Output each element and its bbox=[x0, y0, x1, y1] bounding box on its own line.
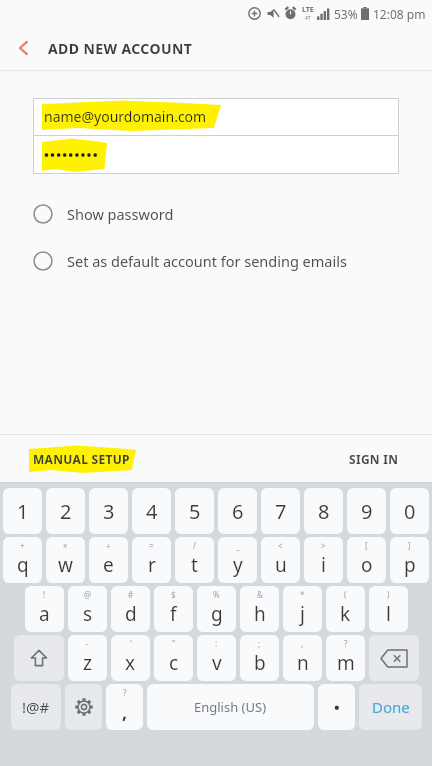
button[interactable]: , bbox=[283, 635, 322, 681]
button[interactable]: 3 bbox=[89, 488, 128, 534]
staticText: ( bbox=[344, 589, 347, 600]
button[interactable]: " bbox=[154, 635, 193, 681]
staticText: u bbox=[275, 552, 287, 578]
staticText: @ bbox=[84, 589, 92, 600]
button[interactable]: > bbox=[304, 537, 343, 583]
staticText: & bbox=[257, 589, 263, 600]
staticText: LTE bbox=[302, 5, 314, 15]
staticText: , bbox=[301, 638, 304, 649]
button[interactable]: ] bbox=[390, 537, 429, 583]
staticText: $ bbox=[171, 589, 176, 600]
staticText: q bbox=[17, 552, 29, 578]
staticText: # bbox=[128, 589, 134, 600]
button[interactable]: ( bbox=[326, 586, 365, 632]
button[interactable]: MANUAL SETUP bbox=[33, 451, 130, 467]
button[interactable]: Shift bbox=[14, 635, 64, 681]
staticText: ] bbox=[408, 540, 411, 551]
button[interactable]: 9 bbox=[347, 488, 386, 534]
staticText: Done bbox=[372, 697, 410, 717]
staticText: × bbox=[63, 540, 68, 551]
button[interactable]: 2 bbox=[46, 488, 85, 534]
button[interactable]: Done bbox=[359, 684, 422, 730]
button[interactable]: Show password bbox=[33, 190, 432, 237]
button[interactable]: ••••••••• bbox=[33, 136, 399, 173]
button[interactable]: $ bbox=[154, 586, 193, 632]
button[interactable]: / bbox=[175, 537, 214, 583]
button[interactable]: !@# bbox=[11, 684, 61, 730]
staticText: / bbox=[193, 540, 196, 551]
staticText: b bbox=[254, 650, 266, 676]
staticText: ? bbox=[123, 687, 127, 698]
staticText: f bbox=[170, 601, 177, 627]
staticText: c bbox=[169, 650, 179, 676]
staticText: - bbox=[86, 638, 89, 649]
staticText: ÷ bbox=[106, 540, 111, 551]
button[interactable]: < bbox=[261, 537, 300, 583]
button[interactable]: name@yourdomain.com bbox=[33, 98, 399, 135]
button[interactable]: 1 bbox=[3, 488, 42, 534]
button[interactable]: Backspace bbox=[369, 635, 419, 681]
staticText: _ bbox=[236, 540, 240, 551]
button[interactable]: Back bbox=[0, 26, 48, 70]
staticText: % bbox=[213, 589, 220, 600]
button[interactable]: + bbox=[3, 537, 42, 583]
staticText: English (US) bbox=[194, 698, 267, 716]
staticText: x bbox=[125, 650, 136, 676]
staticText: g bbox=[211, 601, 223, 627]
button[interactable]: ! bbox=[25, 586, 64, 632]
button[interactable]: [ bbox=[347, 537, 386, 583]
button[interactable]: & bbox=[240, 586, 279, 632]
button[interactable]: : bbox=[197, 635, 236, 681]
staticText: k bbox=[340, 601, 351, 627]
staticText: z bbox=[83, 650, 92, 676]
staticText: h bbox=[254, 601, 266, 627]
staticText: ADD NEW ACCOUNT bbox=[48, 39, 193, 58]
button[interactable]: ? bbox=[106, 684, 143, 730]
staticText: MANUAL SETUP bbox=[33, 451, 130, 467]
button[interactable]: 0 bbox=[390, 488, 429, 534]
button[interactable]: 7 bbox=[261, 488, 300, 534]
staticText: y bbox=[233, 552, 243, 578]
button[interactable]: _ bbox=[218, 537, 257, 583]
button[interactable]: SIGN IN bbox=[349, 451, 399, 467]
staticText: = bbox=[149, 540, 154, 551]
staticText: ) bbox=[387, 589, 390, 600]
staticText: 4 bbox=[146, 498, 158, 525]
button[interactable]: % bbox=[197, 586, 236, 632]
button[interactable]: = bbox=[132, 537, 171, 583]
staticText: Set as default account for sending email… bbox=[67, 251, 347, 271]
button[interactable]: 8 bbox=[304, 488, 343, 534]
button[interactable]: × bbox=[46, 537, 85, 583]
staticText: 6 bbox=[232, 498, 244, 525]
staticText: SIGN IN bbox=[349, 451, 399, 467]
button[interactable]: 4 bbox=[132, 488, 171, 534]
staticText: [ bbox=[365, 540, 368, 551]
button[interactable]: English (US) bbox=[147, 684, 314, 730]
button[interactable]: 5 bbox=[175, 488, 214, 534]
button[interactable]: 6 bbox=[218, 488, 257, 534]
staticText: • bbox=[334, 697, 340, 717]
button[interactable]: @ bbox=[68, 586, 107, 632]
staticText: w bbox=[58, 552, 73, 578]
staticText: n bbox=[297, 650, 309, 676]
staticText: ••••••••• bbox=[44, 146, 99, 164]
button[interactable]: ? bbox=[326, 635, 365, 681]
button[interactable]: Keyboard settings bbox=[65, 684, 102, 730]
staticText: ? bbox=[344, 638, 348, 649]
button[interactable]: - bbox=[68, 635, 107, 681]
button[interactable]: ' bbox=[111, 635, 150, 681]
button[interactable]: Set as default account for sending email… bbox=[33, 237, 432, 284]
staticText: > bbox=[321, 540, 326, 551]
button[interactable]: ; bbox=[240, 635, 279, 681]
staticText: v bbox=[212, 650, 222, 676]
staticText: 12:08 pm bbox=[373, 6, 426, 22]
staticText: 3 bbox=[103, 498, 115, 525]
staticText: m bbox=[337, 650, 355, 676]
button[interactable]: # bbox=[111, 586, 150, 632]
button[interactable]: • bbox=[318, 684, 355, 730]
button[interactable]: ) bbox=[369, 586, 408, 632]
staticText: i bbox=[321, 552, 326, 578]
button[interactable]: * bbox=[283, 586, 322, 632]
button[interactable]: ÷ bbox=[89, 537, 128, 583]
staticText: 7 bbox=[275, 498, 287, 525]
